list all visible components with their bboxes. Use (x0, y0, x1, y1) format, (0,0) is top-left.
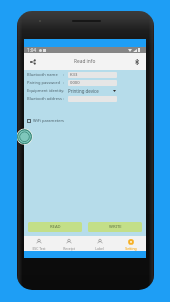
button[interactable]: Connect device (26, 53, 40, 70)
staticText: Pairing password (27, 80, 60, 86)
button[interactable]: Label (84, 236, 115, 251)
button[interactable]: WiFi parameters (24, 117, 146, 125)
staticText: ESC Test (32, 246, 46, 251)
button[interactable]: Receipt (54, 236, 84, 251)
staticText: Receipt (63, 246, 75, 251)
button[interactable]: Setting (115, 236, 146, 251)
staticText: Bluetooth name (27, 72, 58, 78)
button[interactable]: 0000 (70, 80, 117, 86)
staticText: 0000 (70, 80, 80, 86)
staticText: Read info (74, 58, 96, 65)
staticText: Label (95, 246, 104, 251)
staticText: Bluetooth address (27, 96, 62, 102)
staticText: 1:04 (27, 47, 37, 53)
staticText: : (63, 80, 65, 86)
button[interactable]: K33 (70, 72, 117, 78)
button[interactable]: READ (28, 222, 82, 232)
button[interactable]: Bluetooth (131, 53, 143, 70)
staticText: Setting (125, 246, 137, 251)
staticText: K33 (70, 72, 78, 78)
staticText: Equipment identity (27, 88, 63, 94)
button[interactable]: Printing device (68, 88, 117, 94)
staticText: : (63, 96, 65, 102)
button[interactable]: ESC Test (24, 236, 54, 251)
staticText: : (63, 88, 65, 94)
staticText: WRITE (109, 224, 122, 230)
staticText: WiFi parameters (33, 118, 65, 124)
staticText: Printing device (68, 88, 99, 94)
staticText: : (63, 72, 65, 78)
staticText: READ (50, 224, 61, 230)
button[interactable]: WRITE (88, 222, 142, 232)
